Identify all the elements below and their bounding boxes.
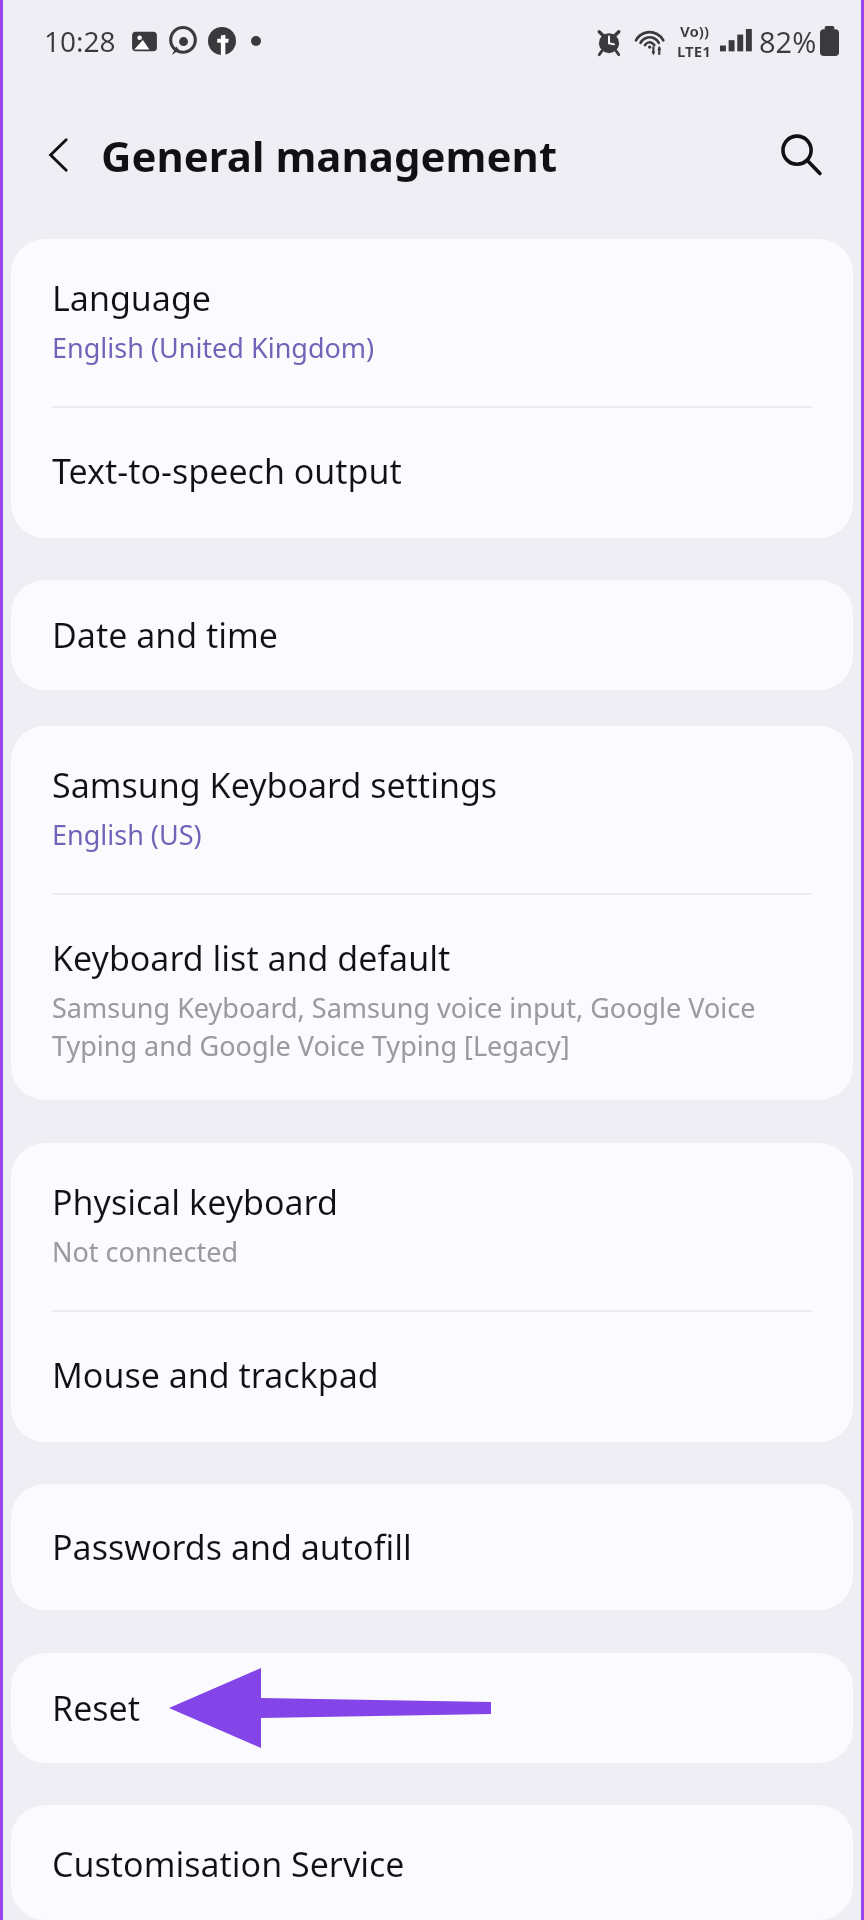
staticText: General management: [101, 127, 558, 184]
staticText: Samsung Keyboard settings: [52, 762, 498, 808]
staticText: English (US): [52, 816, 202, 853]
button[interactable]: Back: [29, 125, 89, 185]
button[interactable]: Samsung Keyboard settings: [11, 726, 853, 893]
button[interactable]: Search: [769, 123, 833, 187]
staticText: Reset: [52, 1685, 141, 1731]
button[interactable]: Physical keyboard: [11, 1143, 853, 1310]
staticText: Passwords and autofill: [52, 1524, 412, 1570]
staticText: English (United Kingdom): [52, 329, 375, 366]
button[interactable]: Reset: [11, 1653, 853, 1763]
staticText: Vo)): [680, 21, 709, 41]
staticText: Date and time: [52, 612, 279, 658]
staticText: Customisation Service: [52, 1841, 405, 1886]
staticText: Text-to-speech output: [52, 448, 402, 494]
staticText: Physical keyboard: [52, 1179, 338, 1225]
staticText: 10:28: [44, 22, 116, 60]
staticText: Keyboard list and default: [52, 935, 451, 981]
staticText: LTE1: [677, 41, 711, 61]
button[interactable]: Keyboard list and default: [11, 895, 853, 1100]
button[interactable]: Mouse and trackpad: [11, 1312, 853, 1442]
staticText: Not connected: [52, 1233, 239, 1270]
button[interactable]: Text-to-speech output: [11, 408, 853, 538]
button[interactable]: Customisation Service: [11, 1805, 853, 1920]
staticText: Samsung Keyboard, Samsung voice input, G…: [52, 989, 756, 1064]
staticText: 82%: [759, 22, 817, 61]
staticText: Language: [52, 275, 211, 321]
staticText: Mouse and trackpad: [52, 1352, 379, 1398]
button[interactable]: Passwords and autofill: [11, 1484, 853, 1610]
button[interactable]: Language: [11, 239, 853, 406]
button[interactable]: Date and time: [11, 580, 853, 690]
